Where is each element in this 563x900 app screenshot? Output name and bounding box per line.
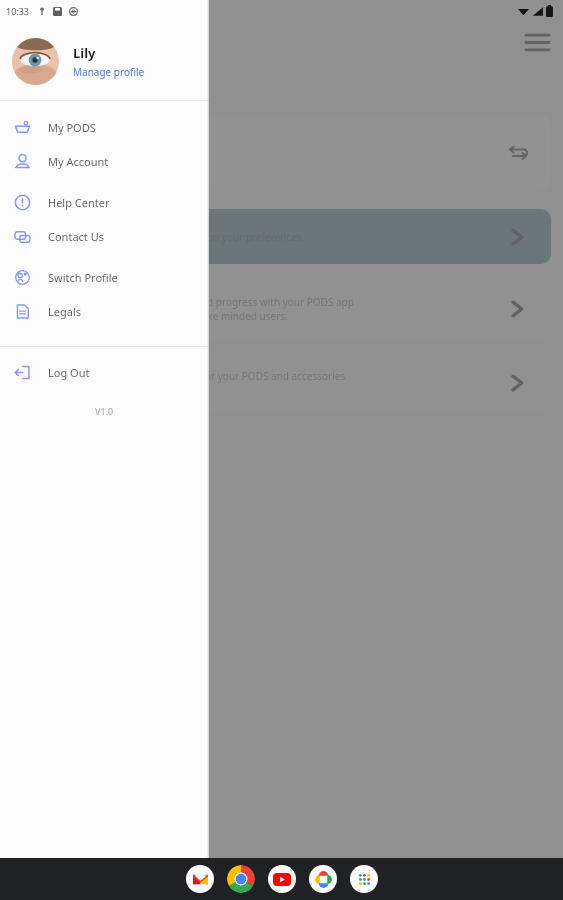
other: Open — [505, 297, 529, 321]
staticText: Help Center — [48, 195, 110, 210]
button[interactable]: Swap — [12, 115, 551, 191]
button[interactable]: YouTube — [268, 865, 296, 893]
button[interactable]: Log Out — [0, 355, 209, 389]
button[interactable]: Help Center — [0, 185, 209, 219]
button[interactable]: Start a relaxing oxygen session based on… — [12, 209, 551, 264]
button[interactable]: My Account — [0, 144, 209, 178]
button[interactable]: Gmail — [186, 865, 214, 893]
other: Open — [505, 371, 529, 395]
staticText: Order replacement oxygen canisters for y… — [28, 369, 346, 383]
other: Open — [505, 225, 529, 249]
button[interactable]: Lily — [0, 22, 209, 100]
button[interactable]: Chrome — [227, 865, 255, 893]
staticText: Start a relaxing oxygen session based on… — [28, 230, 302, 244]
button[interactable]: Switch Profile — [0, 260, 209, 294]
staticText: Manage profile — [73, 65, 145, 79]
button[interactable]: Photos — [309, 865, 337, 893]
button[interactable]: My PODS — [0, 110, 209, 144]
staticText: Keep track of your oxygen sessions and p… — [28, 295, 354, 309]
button[interactable]: Order replacement oxygen canisters for y… — [12, 354, 551, 412]
button[interactable]: Legals — [0, 294, 209, 328]
staticText: Log Out — [48, 365, 90, 380]
button[interactable]: All apps — [350, 865, 378, 893]
staticText: history. Engage with a community of like… — [28, 309, 288, 323]
button[interactable]: Contact Us — [0, 219, 209, 253]
staticText: My Account — [48, 154, 109, 169]
staticText: 10:33 — [6, 5, 30, 17]
button[interactable]: Keep track of your oxygen sessions and p… — [12, 278, 551, 340]
staticText: Lily — [73, 44, 96, 62]
button[interactable]: Menu — [519, 24, 555, 60]
staticText: My PODS — [48, 120, 96, 135]
other: Swap — [504, 139, 532, 167]
staticText: Switch Profile — [48, 270, 118, 285]
staticText: Contact Us — [48, 229, 104, 244]
staticText: V1.0 — [95, 405, 114, 417]
staticText: Legals — [48, 304, 82, 319]
